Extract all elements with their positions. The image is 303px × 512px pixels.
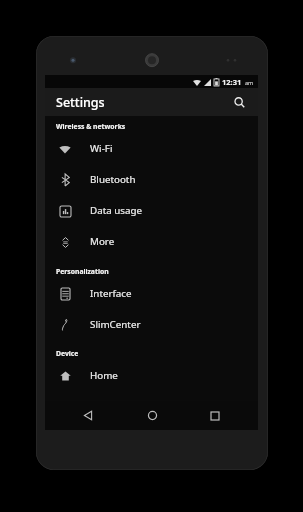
- button[interactable]: Interface: [45, 278, 258, 309]
- staticText: Device: [56, 349, 79, 358]
- button[interactable]: Bluetooth: [45, 164, 258, 195]
- staticText: SlimCenter: [90, 318, 141, 331]
- staticText: Wireless & networks: [56, 122, 126, 131]
- staticText: Data usage: [90, 204, 143, 217]
- button[interactable]: More: [45, 226, 258, 257]
- staticText: Wi-Fi: [90, 142, 113, 155]
- staticText: Home: [90, 369, 118, 382]
- staticText: Personalization: [56, 267, 109, 276]
- button[interactable]: SlimCenter: [45, 309, 258, 340]
- button[interactable]: Home: [45, 360, 258, 391]
- button[interactable]: Data usage: [45, 195, 258, 226]
- staticText: am: [245, 79, 254, 86]
- button[interactable]: Recent apps: [195, 401, 235, 430]
- staticText: 12:31: [222, 77, 242, 87]
- staticText: Settings: [56, 94, 105, 111]
- staticText: Bluetooth: [90, 173, 136, 186]
- staticText: More: [90, 235, 115, 248]
- button[interactable]: Back: [68, 401, 108, 430]
- staticText: Interface: [90, 287, 132, 300]
- button[interactable]: Search: [228, 91, 250, 113]
- button[interactable]: Wi-Fi: [45, 133, 258, 164]
- button[interactable]: Home: [132, 401, 172, 430]
